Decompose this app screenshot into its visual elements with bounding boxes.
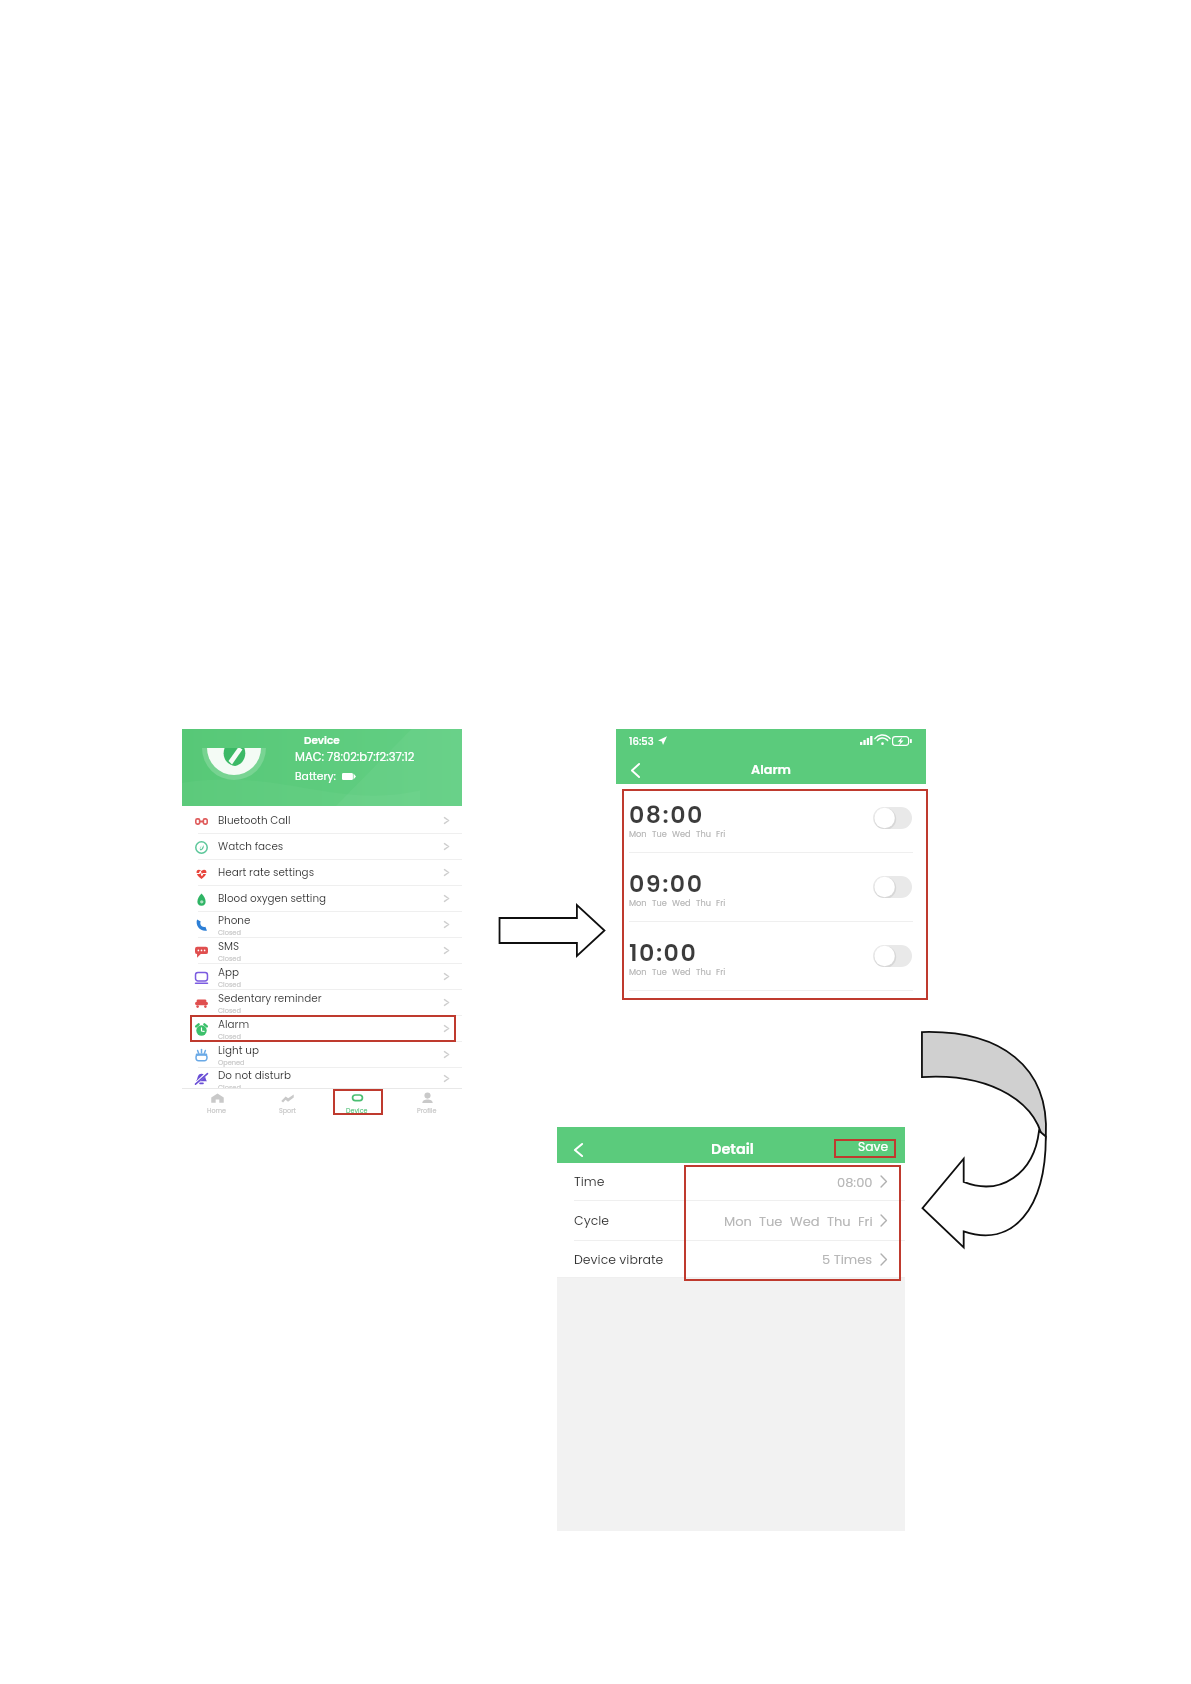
staticText: Closed <box>218 1032 241 1041</box>
button[interactable]: Profile <box>392 1089 462 1118</box>
button[interactable]: Toggle alarm <box>873 945 912 967</box>
button[interactable]: Toggle alarm <box>873 876 912 898</box>
button[interactable]: Light up <box>182 1042 462 1067</box>
button[interactable]: 08:00 <box>616 784 926 852</box>
staticText: 08:00 <box>629 798 704 831</box>
staticText: Device vibrate <box>574 1251 664 1268</box>
button[interactable]: Sport <box>252 1089 322 1118</box>
button[interactable]: Alarm <box>182 1016 462 1041</box>
staticText: Fri <box>716 897 726 908</box>
staticText: Sport <box>279 1106 296 1115</box>
staticText: Wed <box>672 897 691 908</box>
button[interactable]: Bluetooth Call <box>182 808 462 833</box>
staticText: Watch faces <box>218 839 284 854</box>
staticText: Wed <box>672 828 691 839</box>
staticText: Blood oxygen setting <box>218 891 327 906</box>
button[interactable]: App <box>182 964 462 989</box>
staticText: Mon <box>629 897 647 908</box>
staticText: Profile <box>417 1106 437 1115</box>
button[interactable]: Watch faces <box>182 834 462 859</box>
staticText: Fri <box>858 1212 873 1230</box>
staticText: Alarm <box>751 761 791 779</box>
button[interactable]: 10:00 <box>616 922 926 990</box>
staticText: Wed <box>672 966 691 977</box>
staticText: Mon <box>629 828 647 839</box>
button[interactable]: Heart rate settings <box>182 860 462 885</box>
staticText: Alarm <box>218 1017 250 1032</box>
button[interactable]: Sedentary reminder <box>182 990 462 1015</box>
staticText: Closed <box>218 1083 241 1088</box>
button[interactable]: Time <box>557 1163 905 1200</box>
staticText: Opened <box>218 1058 245 1067</box>
staticText: Closed <box>218 980 241 989</box>
staticText: Tue <box>652 897 667 908</box>
staticText: 16:53 <box>629 734 654 748</box>
button[interactable]: 09:00 <box>616 853 926 921</box>
staticText: Device <box>304 733 340 748</box>
button[interactable]: Device vibrate <box>557 1241 905 1277</box>
staticText: Home <box>207 1106 227 1115</box>
staticText: Closed <box>218 1006 241 1015</box>
button[interactable]: Toggle alarm <box>873 807 912 829</box>
staticText: Detail <box>711 1139 754 1159</box>
staticText: 08:00 <box>837 1173 873 1191</box>
staticText: Tue <box>652 828 667 839</box>
staticText: Heart rate settings <box>218 865 315 880</box>
staticText: Save <box>858 1138 889 1155</box>
button[interactable]: Home <box>182 1089 252 1118</box>
staticText: Phone <box>218 913 251 928</box>
staticText: App <box>218 965 240 980</box>
staticText: Device <box>346 1106 368 1115</box>
staticText: SMS <box>218 939 240 954</box>
staticText: Thu <box>696 828 711 839</box>
staticText: Mon <box>629 966 647 977</box>
staticText: 10:00 <box>629 936 698 969</box>
staticText: Thu <box>696 897 711 908</box>
staticText: 5 Times <box>822 1250 873 1268</box>
staticText: Time <box>574 1173 605 1190</box>
button[interactable]: Back <box>625 760 645 780</box>
button[interactable]: SMS <box>182 938 462 963</box>
staticText: Tue <box>759 1212 783 1230</box>
button[interactable]: Save <box>834 1137 896 1156</box>
staticText: Sedentary reminder <box>218 991 322 1006</box>
staticText: Bluetooth Call <box>218 813 291 828</box>
staticText: Battery: <box>295 769 336 784</box>
staticText: Wed <box>790 1212 820 1230</box>
staticText: Closed <box>218 954 241 963</box>
staticText: Cycle <box>574 1212 610 1229</box>
staticText: Tue <box>652 966 667 977</box>
button[interactable]: Blood oxygen setting <box>182 886 462 911</box>
staticText: Thu <box>827 1212 851 1230</box>
button[interactable]: Back <box>568 1140 588 1160</box>
staticText: Light up <box>218 1043 259 1058</box>
button[interactable]: Do not disturb <box>182 1068 462 1088</box>
staticText: Mon <box>724 1212 752 1230</box>
staticText: Closed <box>218 928 241 937</box>
button[interactable]: Cycle <box>557 1201 905 1240</box>
staticText: Fri <box>716 966 726 977</box>
staticText: Thu <box>696 966 711 977</box>
staticText: Do not disturb <box>218 1068 291 1083</box>
staticText: MAC: 78:02:b7:f2:37:12 <box>295 749 415 765</box>
staticText: Fri <box>716 828 726 839</box>
button[interactable]: Phone <box>182 912 462 937</box>
button[interactable]: Device <box>322 1089 392 1118</box>
staticText: 09:00 <box>629 867 704 900</box>
